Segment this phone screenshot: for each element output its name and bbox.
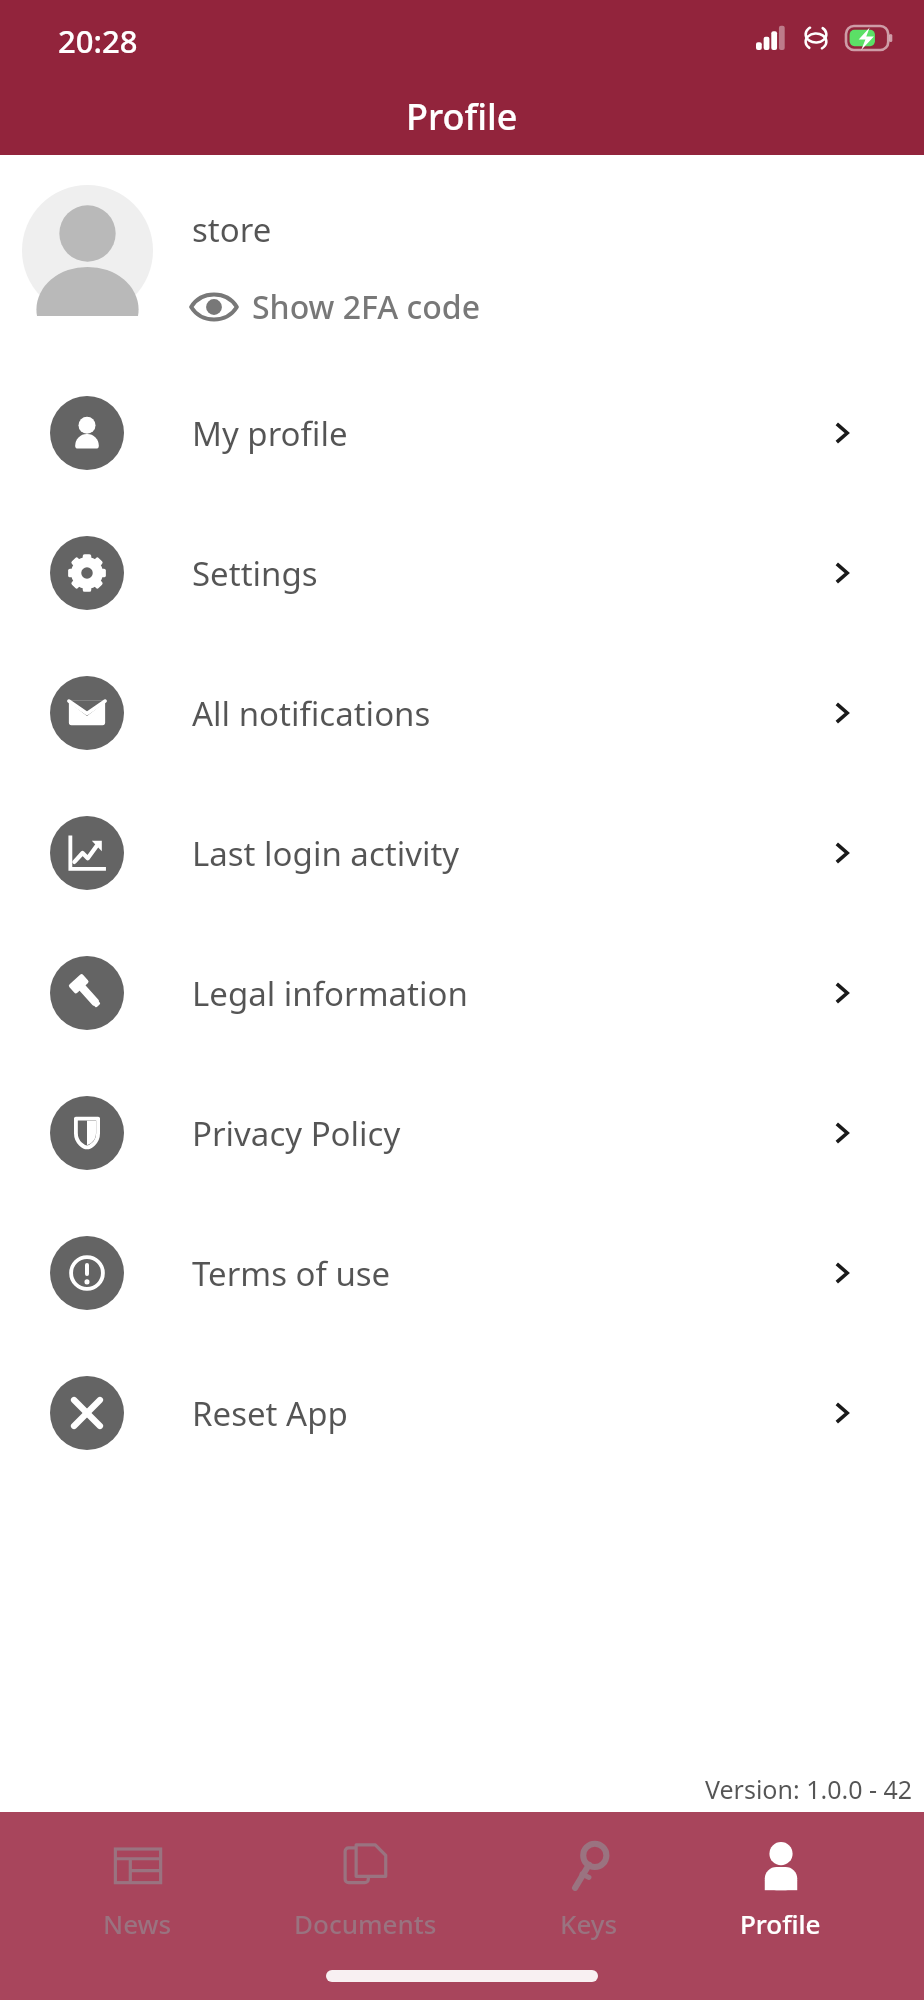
button[interactable]: Legal information	[0, 923, 924, 1063]
button[interactable]: Settings	[0, 503, 924, 643]
staticText: News	[103, 1906, 172, 1941]
button[interactable]: Privacy Policy	[0, 1063, 924, 1203]
button[interactable]: Documents	[274, 1834, 457, 1945]
staticText: Documents	[294, 1906, 437, 1941]
button[interactable]: Terms of use	[0, 1203, 924, 1343]
staticText: Keys	[560, 1906, 618, 1941]
button[interactable]: Reset App	[0, 1343, 924, 1483]
staticText: Settings	[192, 551, 318, 596]
button[interactable]: Profile	[720, 1834, 841, 1945]
button[interactable]: Last login activity	[0, 783, 924, 923]
staticText: Show 2FA code	[252, 285, 481, 329]
staticText: Legal information	[192, 971, 468, 1016]
staticText: All notifications	[192, 691, 431, 736]
staticText: Reset App	[192, 1391, 348, 1436]
button[interactable]: News	[83, 1834, 192, 1945]
staticText: Profile	[740, 1906, 821, 1941]
staticText: Last login activity	[192, 831, 460, 876]
button[interactable]: My profile	[0, 363, 924, 503]
staticText: 20:28	[58, 20, 138, 62]
staticText: Profile	[406, 92, 518, 141]
button[interactable]: All notifications	[0, 643, 924, 783]
staticText: store	[192, 207, 272, 252]
staticText: My profile	[192, 411, 348, 456]
button[interactable]: Show 2FA code	[180, 279, 489, 335]
button[interactable]: Keys	[540, 1834, 638, 1945]
staticText: Version: 1.0.0 - 42	[705, 1772, 913, 1806]
staticText: Terms of use	[192, 1251, 391, 1296]
staticText: Privacy Policy	[192, 1111, 401, 1156]
